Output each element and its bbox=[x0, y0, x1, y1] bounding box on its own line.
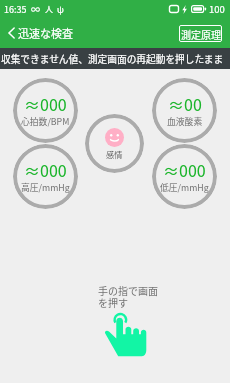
button[interactable]: ≈00 bbox=[152, 78, 217, 143]
staticText: ≈000 bbox=[24, 158, 67, 181]
staticText: 測定原理 bbox=[181, 27, 221, 41]
button[interactable]: Back bbox=[0, 25, 79, 41]
staticText: 人 bbox=[45, 3, 53, 15]
staticText: 感情 bbox=[106, 148, 123, 160]
button[interactable]: 測定原理 bbox=[179, 25, 222, 42]
staticText: 血液酸素 bbox=[167, 115, 203, 128]
staticText: 迅速な検査 bbox=[18, 25, 73, 41]
button[interactable]: ≈000 bbox=[13, 144, 78, 209]
staticText: ≈000 bbox=[24, 92, 67, 115]
staticText: 低圧/mmHg bbox=[160, 181, 209, 194]
button[interactable]: ≈000 bbox=[13, 78, 78, 143]
staticText: ≈00 bbox=[168, 92, 202, 115]
staticText: 手の指で画面 を押す bbox=[98, 283, 158, 309]
button[interactable]: 感情 bbox=[85, 114, 144, 173]
staticText: 100 bbox=[209, 2, 225, 16]
staticText: 高圧/mmHg bbox=[21, 181, 70, 194]
staticText: ψ bbox=[57, 3, 64, 16]
staticText: 収集できません値、測定画面の再起動を押したまま bbox=[1, 52, 224, 66]
staticText: ∞ bbox=[31, 3, 41, 16]
staticText: 心拍数/BPM bbox=[21, 115, 70, 128]
staticText: ≈000 bbox=[163, 158, 206, 181]
staticText: 16:35 bbox=[4, 3, 27, 16]
other: Back bbox=[8, 27, 15, 39]
button[interactable]: ≈000 bbox=[152, 144, 217, 209]
button[interactable]: 手の指で画面 を押す bbox=[98, 283, 158, 309]
